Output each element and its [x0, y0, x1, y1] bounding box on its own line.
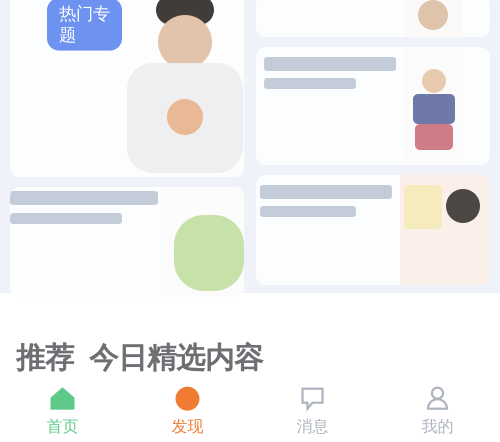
staticText: 推荐	[16, 340, 74, 376]
staticText: 我的	[421, 417, 453, 436]
staticText: 消息	[296, 417, 328, 436]
staticText: 首页	[46, 417, 78, 436]
button[interactable]: 首页	[0, 380, 125, 442]
button[interactable]: 热门专题	[10, 0, 244, 177]
button[interactable]	[256, 0, 490, 37]
staticText: 热门专题	[59, 3, 110, 46]
staticText: 发现	[171, 417, 203, 436]
button[interactable]: 发现	[125, 380, 250, 442]
button[interactable]	[256, 47, 490, 165]
staticText: 今日精选内容	[89, 340, 263, 376]
button[interactable]: 我的	[375, 380, 500, 442]
button[interactable]	[256, 175, 490, 285]
button[interactable]	[10, 187, 244, 297]
button[interactable]: 消息	[250, 380, 375, 442]
